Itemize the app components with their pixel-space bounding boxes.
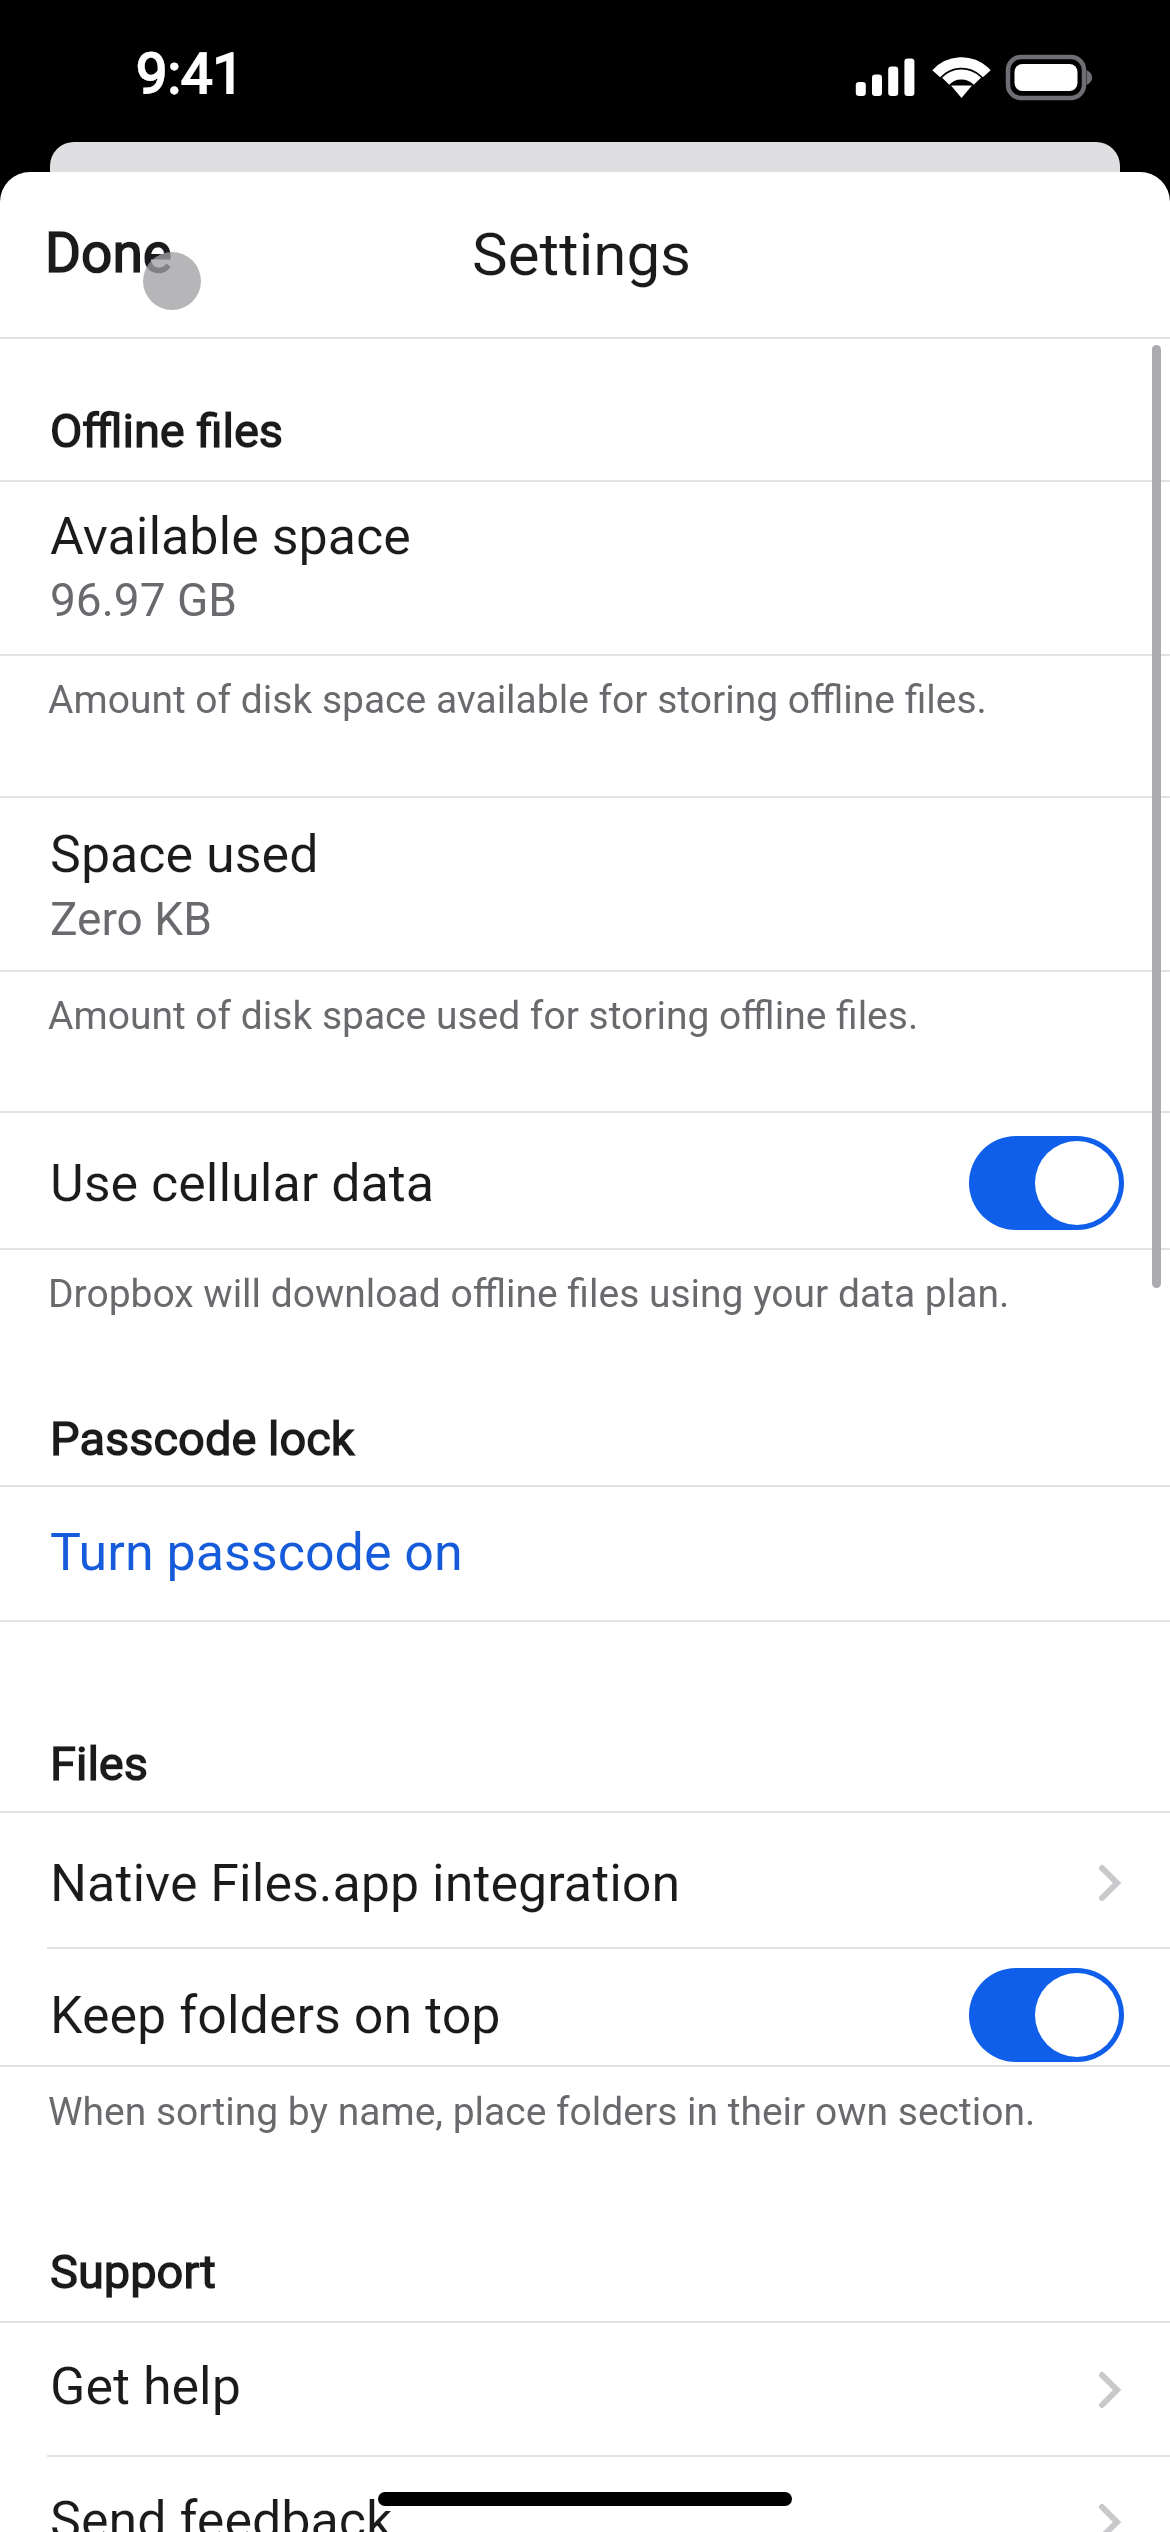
staticText: Get help bbox=[50, 2356, 241, 2417]
staticText: Done bbox=[45, 221, 172, 281]
button[interactable] bbox=[0, 1487, 1170, 1620]
button[interactable]: On bbox=[969, 1136, 1124, 1230]
staticText: Amount of disk space available for stori… bbox=[48, 677, 987, 723]
staticText: Settings bbox=[472, 219, 692, 289]
button[interactable]: On bbox=[969, 1968, 1124, 2062]
button[interactable] bbox=[0, 2457, 1170, 2532]
button[interactable] bbox=[0, 1113, 1170, 1248]
staticText: 96.97 GB bbox=[50, 573, 237, 627]
staticText: Keep folders on top bbox=[50, 1985, 501, 2046]
staticText: Space used bbox=[50, 824, 319, 885]
staticText: Use cellular data bbox=[50, 1153, 435, 1214]
button[interactable] bbox=[0, 1813, 1170, 1947]
staticText: Send feedback bbox=[50, 2490, 393, 2532]
staticText: Amount of disk space used for storing of… bbox=[48, 993, 919, 1039]
staticText: Files bbox=[50, 1736, 149, 1791]
staticText: Support bbox=[50, 2244, 216, 2299]
button[interactable] bbox=[0, 798, 1170, 970]
staticText: Native Files.app integration bbox=[50, 1853, 681, 1914]
staticText: 9:41 bbox=[136, 41, 244, 107]
button[interactable] bbox=[0, 482, 1170, 654]
staticText: Turn passcode on bbox=[50, 1522, 463, 1583]
button[interactable] bbox=[0, 1949, 1170, 2065]
staticText: Offline files bbox=[50, 403, 284, 458]
staticText: Available space bbox=[50, 506, 411, 567]
button[interactable] bbox=[0, 2323, 1170, 2455]
staticText: Zero KB bbox=[50, 892, 212, 946]
staticText: Dropbox will download offline files usin… bbox=[48, 1271, 1010, 1317]
staticText: When sorting by name, place folders in t… bbox=[48, 2089, 1036, 2135]
button[interactable]: Done bbox=[50, 222, 178, 282]
staticText: Passcode lock bbox=[50, 1411, 355, 1466]
other: Signal, Wi-Fi and battery status bbox=[0, 0, 1170, 142]
